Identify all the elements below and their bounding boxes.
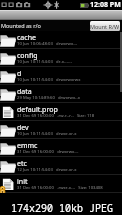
staticText: dev <box>17 123 29 133</box>
staticText: 10 Jun 10:11:54:03 drwxr-xr-x <box>17 131 77 137</box>
staticText: 10 Jun 10:11:54:03 drwxrwxrwx <box>17 77 81 83</box>
button[interactable]: default.prop <box>0 103 122 121</box>
staticText: d <box>17 69 22 79</box>
staticText: etc <box>17 159 27 169</box>
button[interactable]: Mount R/W <box>90 21 120 31</box>
staticText: default.prop <box>17 105 58 115</box>
button[interactable]: emmc <box>0 139 122 157</box>
button[interactable]: etc <box>0 157 122 175</box>
staticText: 29 May 10:14:89:60 drwxrwx--x <box>17 95 81 101</box>
staticText: config <box>17 51 38 61</box>
staticText: data <box>17 87 32 97</box>
staticText: Mount R/W <box>90 23 120 30</box>
staticText: 174x290 10kb JPEG <box>11 201 113 215</box>
staticText: init <box>17 177 28 187</box>
staticText: 12 Jun 10:11:54:03 drwxr-xr-x <box>17 167 77 173</box>
staticText: cache <box>17 33 36 43</box>
button[interactable]: init <box>0 175 122 193</box>
button[interactable]: d <box>0 67 122 85</box>
staticText: 10 Jun 10:11:54:03 dr-x------ <box>17 59 73 65</box>
button[interactable]: config <box>0 49 122 67</box>
staticText: Mounted as r/o <box>1 22 41 29</box>
button[interactable]: cache <box>0 31 122 49</box>
staticText: 12:08 PM <box>90 0 121 10</box>
staticText: 10 Jun 10:06:48:03 drwxrwx--- <box>17 41 78 47</box>
button[interactable]: dev <box>0 121 122 139</box>
staticText: 31 Dec 69 16:00:00 -rw-r--r-- Size: 118 <box>17 113 95 119</box>
staticText: emmc <box>17 141 38 151</box>
staticText: 31 Dec 69 16:00:00 drwxrwx--- <box>17 149 79 155</box>
staticText: 31 Dec 69 16:00:00 -rwxr-x--- Size: 1034… <box>17 185 103 191</box>
button[interactable]: data <box>0 85 122 103</box>
